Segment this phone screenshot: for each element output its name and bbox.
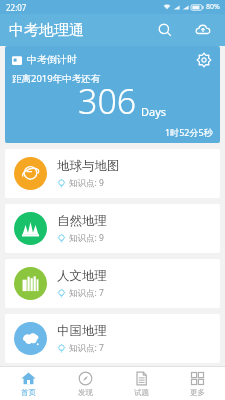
button[interactable]: 首页 <box>0 367 57 400</box>
button[interactable]: 发现 <box>57 367 113 400</box>
staticText: 知识点: 7 <box>69 287 104 299</box>
staticText: Days <box>141 104 167 119</box>
staticText: 人文地理 <box>57 268 107 284</box>
staticText: 知识点: 9 <box>69 177 104 189</box>
staticText: 更多 <box>190 388 205 397</box>
button[interactable]: 人文地理 <box>5 259 220 308</box>
staticText: 发现 <box>78 388 93 397</box>
staticText: 试题 <box>134 388 149 397</box>
staticText: 1时52分5秒 <box>165 126 213 138</box>
button[interactable]: Cloud upload <box>189 16 217 44</box>
button[interactable]: 自然地理 <box>5 204 220 253</box>
button[interactable]: 更多 <box>169 367 225 400</box>
button[interactable]: Search <box>151 16 179 44</box>
staticText: 80% <box>206 2 220 12</box>
staticText: 306 <box>78 78 137 124</box>
staticText: 中考地理通 <box>9 21 84 40</box>
button[interactable]: Settings <box>193 49 215 71</box>
button[interactable]: 中国地理 <box>5 314 220 363</box>
button[interactable]: 地球与地图 <box>5 149 220 198</box>
staticText: 自然地理 <box>57 213 107 229</box>
staticText: 知识点: 7 <box>69 342 104 354</box>
staticText: 地球与地图 <box>57 158 120 174</box>
staticText: 中考倒计时 <box>27 53 77 66</box>
staticText: 距离2019年中考还有 <box>12 72 101 85</box>
staticText: 首页 <box>21 388 36 397</box>
staticText: 知识点: 9 <box>69 232 104 244</box>
staticText: 中国地理 <box>57 323 107 339</box>
button[interactable]: 中考倒计时 <box>5 46 220 143</box>
button[interactable]: 试题 <box>113 367 169 400</box>
staticText: 22:07 <box>6 2 27 13</box>
